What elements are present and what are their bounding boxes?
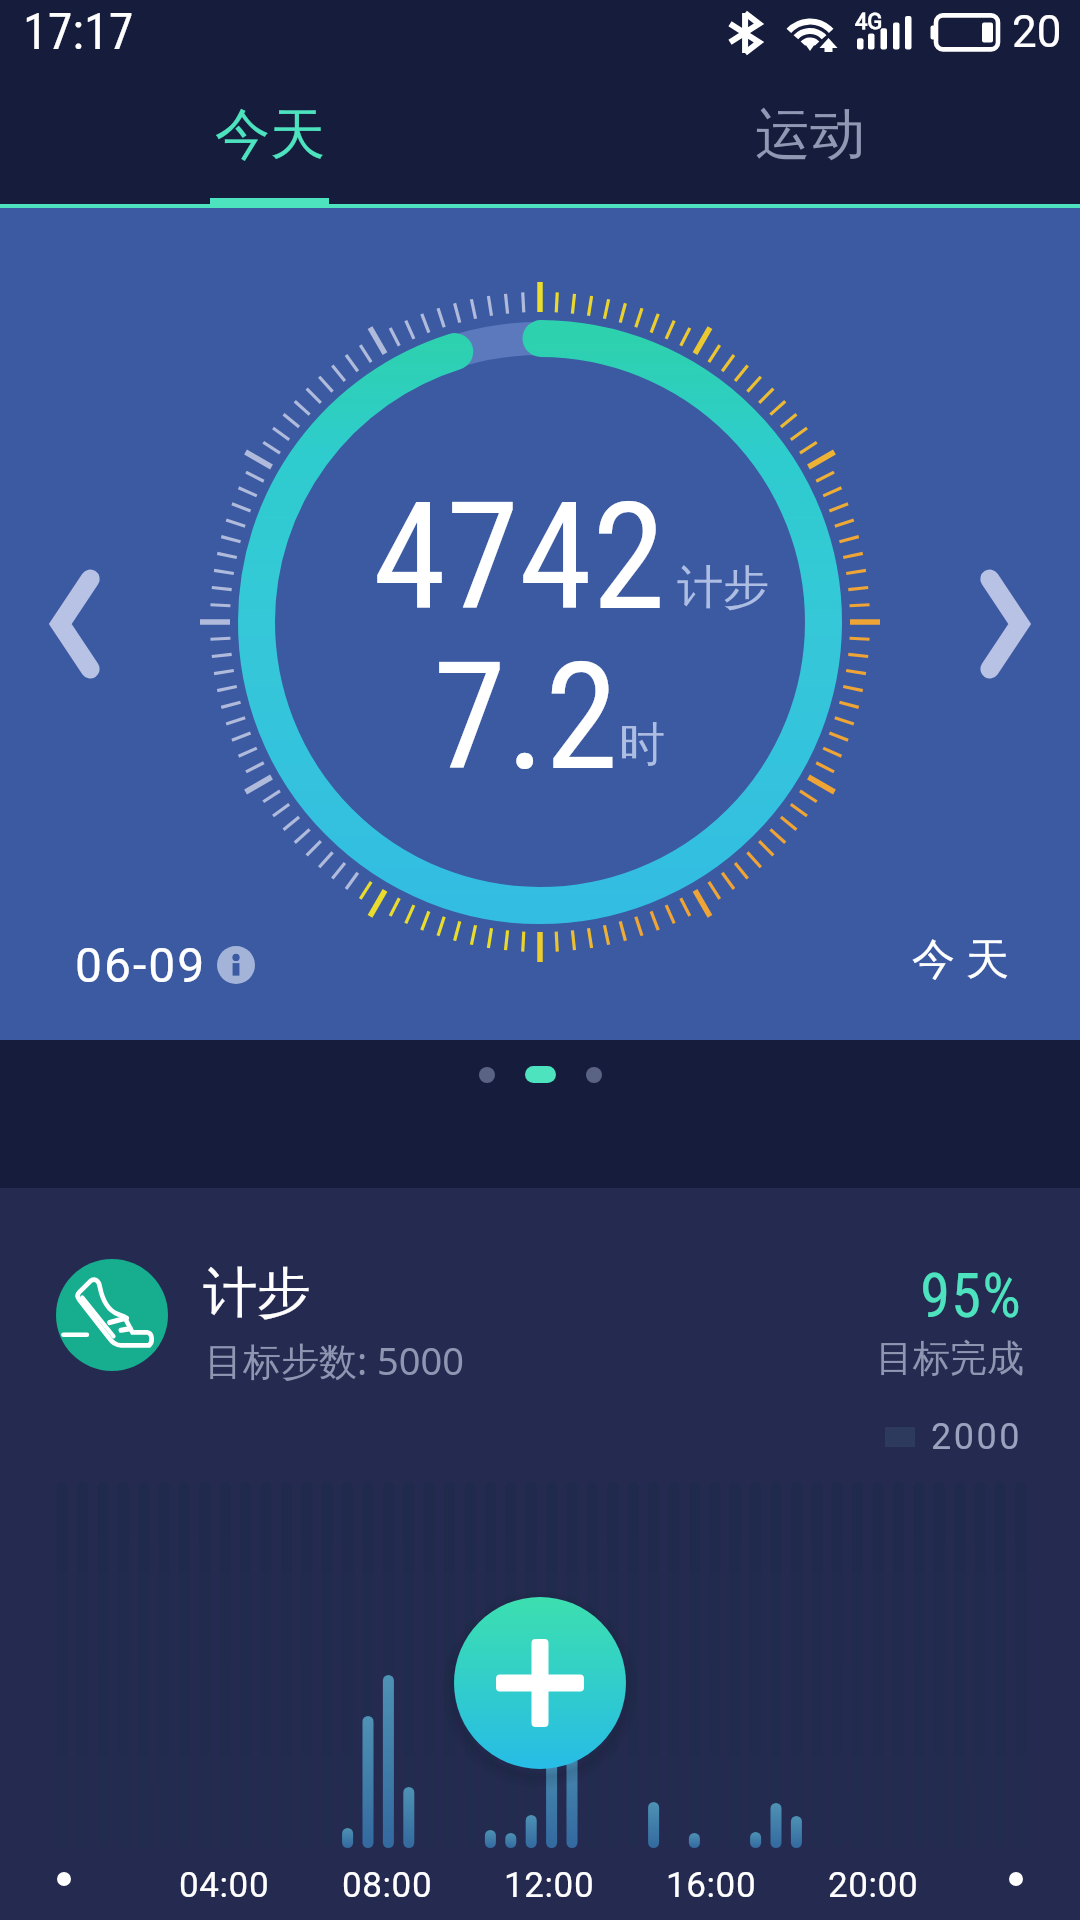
staticText: 17:17 bbox=[23, 3, 134, 62]
button[interactable]: Add bbox=[454, 1597, 626, 1769]
staticText: 运动 bbox=[755, 100, 865, 169]
staticText: 04:00 bbox=[179, 1865, 270, 1906]
staticText: 计步 bbox=[677, 559, 769, 617]
staticText: 目标完成 bbox=[876, 1335, 1024, 1382]
staticText: 06-09 bbox=[75, 937, 207, 993]
button[interactable] bbox=[586, 1067, 602, 1083]
staticText: 12:00 bbox=[504, 1865, 595, 1906]
staticText: 7.2 bbox=[433, 631, 619, 804]
staticText: 4G bbox=[855, 9, 883, 35]
staticText: 今天 bbox=[215, 100, 325, 169]
staticText: 20 bbox=[1012, 6, 1062, 58]
staticText: 2000 bbox=[931, 1416, 1022, 1458]
button[interactable]: Previous day bbox=[22, 569, 132, 679]
button[interactable]: 运动 bbox=[540, 68, 1080, 208]
staticText: 95% bbox=[920, 1260, 1022, 1331]
staticText: 时 bbox=[619, 716, 665, 774]
button[interactable]: Info bbox=[217, 946, 255, 984]
staticText: 计步 bbox=[203, 1259, 311, 1327]
staticText: 今 天 bbox=[912, 928, 1010, 987]
button[interactable]: 今天 bbox=[0, 68, 540, 208]
button[interactable]: Next day bbox=[948, 569, 1058, 679]
staticText: 08:00 bbox=[342, 1865, 433, 1906]
staticText: 20:00 bbox=[828, 1865, 919, 1906]
button[interactable] bbox=[479, 1067, 495, 1083]
staticText: 目标步数: 5000 bbox=[205, 1334, 465, 1386]
button[interactable] bbox=[525, 1066, 556, 1083]
staticText: 4742 bbox=[373, 471, 666, 644]
staticText: 16:00 bbox=[666, 1865, 757, 1906]
